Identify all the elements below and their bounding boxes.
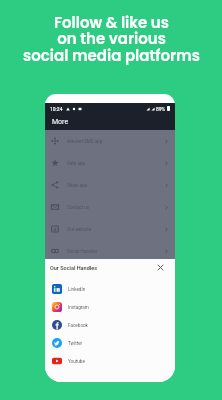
button[interactable]: Our website — [45, 218, 175, 240]
button[interactable]: Share app — [45, 174, 175, 196]
staticText: More — [52, 118, 69, 126]
button[interactable]: Twitter — [45, 334, 175, 352]
staticText: Instagram — [68, 305, 89, 310]
button[interactable]: LinkedIn — [45, 280, 175, 298]
button[interactable]: Rate app — [45, 152, 175, 174]
button[interactable]: Instagram — [45, 298, 175, 316]
staticText: Arkonet SMS app — [67, 139, 103, 144]
staticText: Our Social Handles — [50, 265, 97, 271]
button[interactable]: Contact us — [45, 196, 175, 218]
button[interactable]: Close — [155, 262, 166, 273]
staticText: 10:24 — [50, 106, 63, 112]
staticText: Facebook — [68, 323, 88, 328]
button[interactable]: Social Handles — [45, 240, 175, 262]
staticText: LinkedIn — [68, 287, 86, 292]
staticText: Share app — [67, 183, 88, 188]
staticText: Social Handles — [67, 249, 98, 254]
button[interactable]: Arkonet SMS app — [45, 130, 175, 152]
button[interactable]: Youtube — [45, 352, 175, 370]
staticText: Youtube — [68, 359, 85, 364]
staticText: Our website — [67, 227, 92, 232]
staticText: 89% — [156, 106, 166, 112]
staticText: Contact us — [67, 205, 90, 210]
staticText: Rate app — [67, 161, 86, 166]
button[interactable]: Facebook — [45, 316, 175, 334]
staticText: Twitter — [68, 341, 83, 346]
staticText: Follow & like us on the various social m… — [23, 12, 200, 67]
